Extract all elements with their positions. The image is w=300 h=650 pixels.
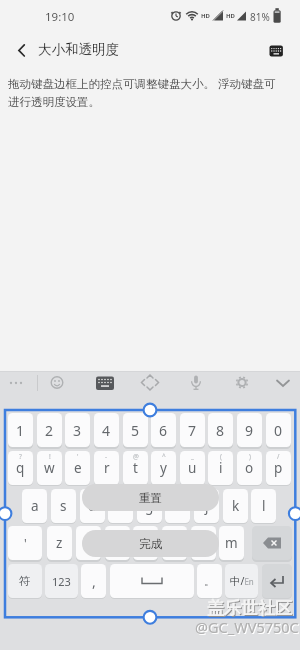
button[interactable]: b	[162, 526, 187, 560]
button[interactable]: 9	[237, 413, 262, 447]
button[interactable]: 8	[208, 413, 233, 447]
staticText: d	[88, 497, 97, 515]
button[interactable]: a	[22, 489, 47, 523]
staticText: 符	[19, 574, 31, 588]
staticText: /	[277, 452, 280, 461]
staticText: 完成	[139, 537, 162, 551]
staticText: l	[262, 497, 266, 515]
staticText: i	[219, 459, 223, 477]
staticText: 4	[102, 421, 111, 440]
button[interactable]: h	[165, 489, 190, 523]
button[interactable]: 0	[266, 413, 291, 447]
button[interactable]: y	[151, 451, 176, 485]
button[interactable]: x	[76, 526, 101, 560]
button[interactable]: 3	[65, 413, 90, 447]
staticText: ?	[19, 452, 22, 461]
staticText: w	[44, 459, 55, 477]
button[interactable]: r	[94, 451, 119, 485]
button[interactable]: 2	[37, 413, 62, 447]
staticText: m	[225, 534, 238, 552]
staticText: z	[56, 534, 63, 552]
button[interactable]: t	[123, 451, 148, 485]
button[interactable]: 7	[180, 413, 205, 447]
button[interactable]: 重置	[82, 484, 219, 511]
staticText: ,	[92, 572, 96, 591]
button[interactable]	[93, 371, 117, 403]
button[interactable]	[262, 564, 292, 598]
button[interactable]	[110, 564, 194, 598]
button[interactable]: g	[137, 489, 162, 523]
button[interactable]: n	[191, 526, 216, 560]
button[interactable]: 6	[151, 413, 176, 447]
button[interactable]	[252, 526, 292, 560]
button[interactable]: 完成	[82, 530, 219, 557]
button[interactable]: p	[266, 451, 291, 485]
staticText: @	[133, 452, 139, 461]
staticText: _	[191, 452, 194, 461]
staticText: -	[105, 452, 108, 461]
button[interactable]: ,	[81, 564, 106, 598]
button[interactable]: q	[8, 451, 33, 485]
staticText: 重置	[139, 491, 162, 505]
button[interactable]	[271, 371, 295, 403]
button[interactable]: k	[223, 489, 248, 523]
staticText: 123	[52, 574, 71, 589]
button[interactable]: 中/En	[225, 564, 258, 598]
staticText: 8	[216, 421, 225, 440]
staticText: 盖乐世社区	[207, 598, 292, 619]
button[interactable]: j	[194, 489, 219, 523]
button[interactable]	[45, 371, 69, 403]
staticText: y	[160, 459, 167, 477]
button[interactable]	[138, 371, 162, 403]
button[interactable]	[230, 371, 254, 403]
staticText: 盖乐世社区	[208, 599, 293, 620]
button[interactable]: f	[108, 489, 133, 523]
staticText: o	[245, 459, 254, 477]
staticText: 7	[188, 421, 197, 440]
button[interactable]: z	[47, 526, 72, 560]
staticText: 81%	[250, 10, 270, 24]
staticText: 3	[73, 421, 82, 440]
button[interactable]: 1	[8, 413, 33, 447]
button[interactable]: 。	[197, 564, 222, 598]
button[interactable]: s	[51, 489, 76, 523]
staticText: @GC_WV5750C	[196, 618, 300, 638]
staticText: '	[24, 535, 27, 551]
staticText: g	[145, 497, 154, 515]
button[interactable]: i	[208, 451, 233, 485]
button[interactable]: m	[219, 526, 244, 560]
button[interactable]: c	[105, 526, 130, 560]
button[interactable]: 4	[94, 413, 119, 447]
button[interactable]: w	[37, 451, 62, 485]
staticText: (	[220, 452, 222, 461]
button[interactable]: v	[133, 526, 158, 560]
staticText: e	[74, 459, 82, 477]
staticText: u	[188, 459, 197, 477]
button[interactable]	[4, 372, 28, 402]
staticText: r	[104, 459, 110, 477]
button[interactable]: u	[180, 451, 205, 485]
button[interactable]: 符	[8, 564, 42, 598]
button[interactable]	[6, 36, 32, 62]
staticText: !	[49, 452, 51, 461]
staticText: '	[77, 452, 79, 461]
staticText: s	[60, 497, 67, 515]
staticText: 拖动键盘边框上的控点可调整键盘大小。 浮动键盘可 进行透明度设置。	[8, 76, 276, 109]
button[interactable]: '	[8, 526, 42, 560]
button[interactable]: o	[237, 451, 262, 485]
button[interactable]: l	[251, 489, 276, 523]
button[interactable]: e	[65, 451, 90, 485]
button[interactable]: 5	[123, 413, 148, 447]
staticText: j	[205, 497, 209, 515]
button[interactable]	[184, 371, 208, 403]
button[interactable]: d	[80, 489, 105, 523]
staticText: f	[118, 497, 123, 515]
button[interactable]	[262, 38, 290, 62]
staticText: 2	[45, 421, 54, 440]
button[interactable]: 123	[45, 564, 78, 598]
staticText: 9	[245, 421, 254, 440]
staticText: 大小和透明度	[38, 41, 119, 58]
